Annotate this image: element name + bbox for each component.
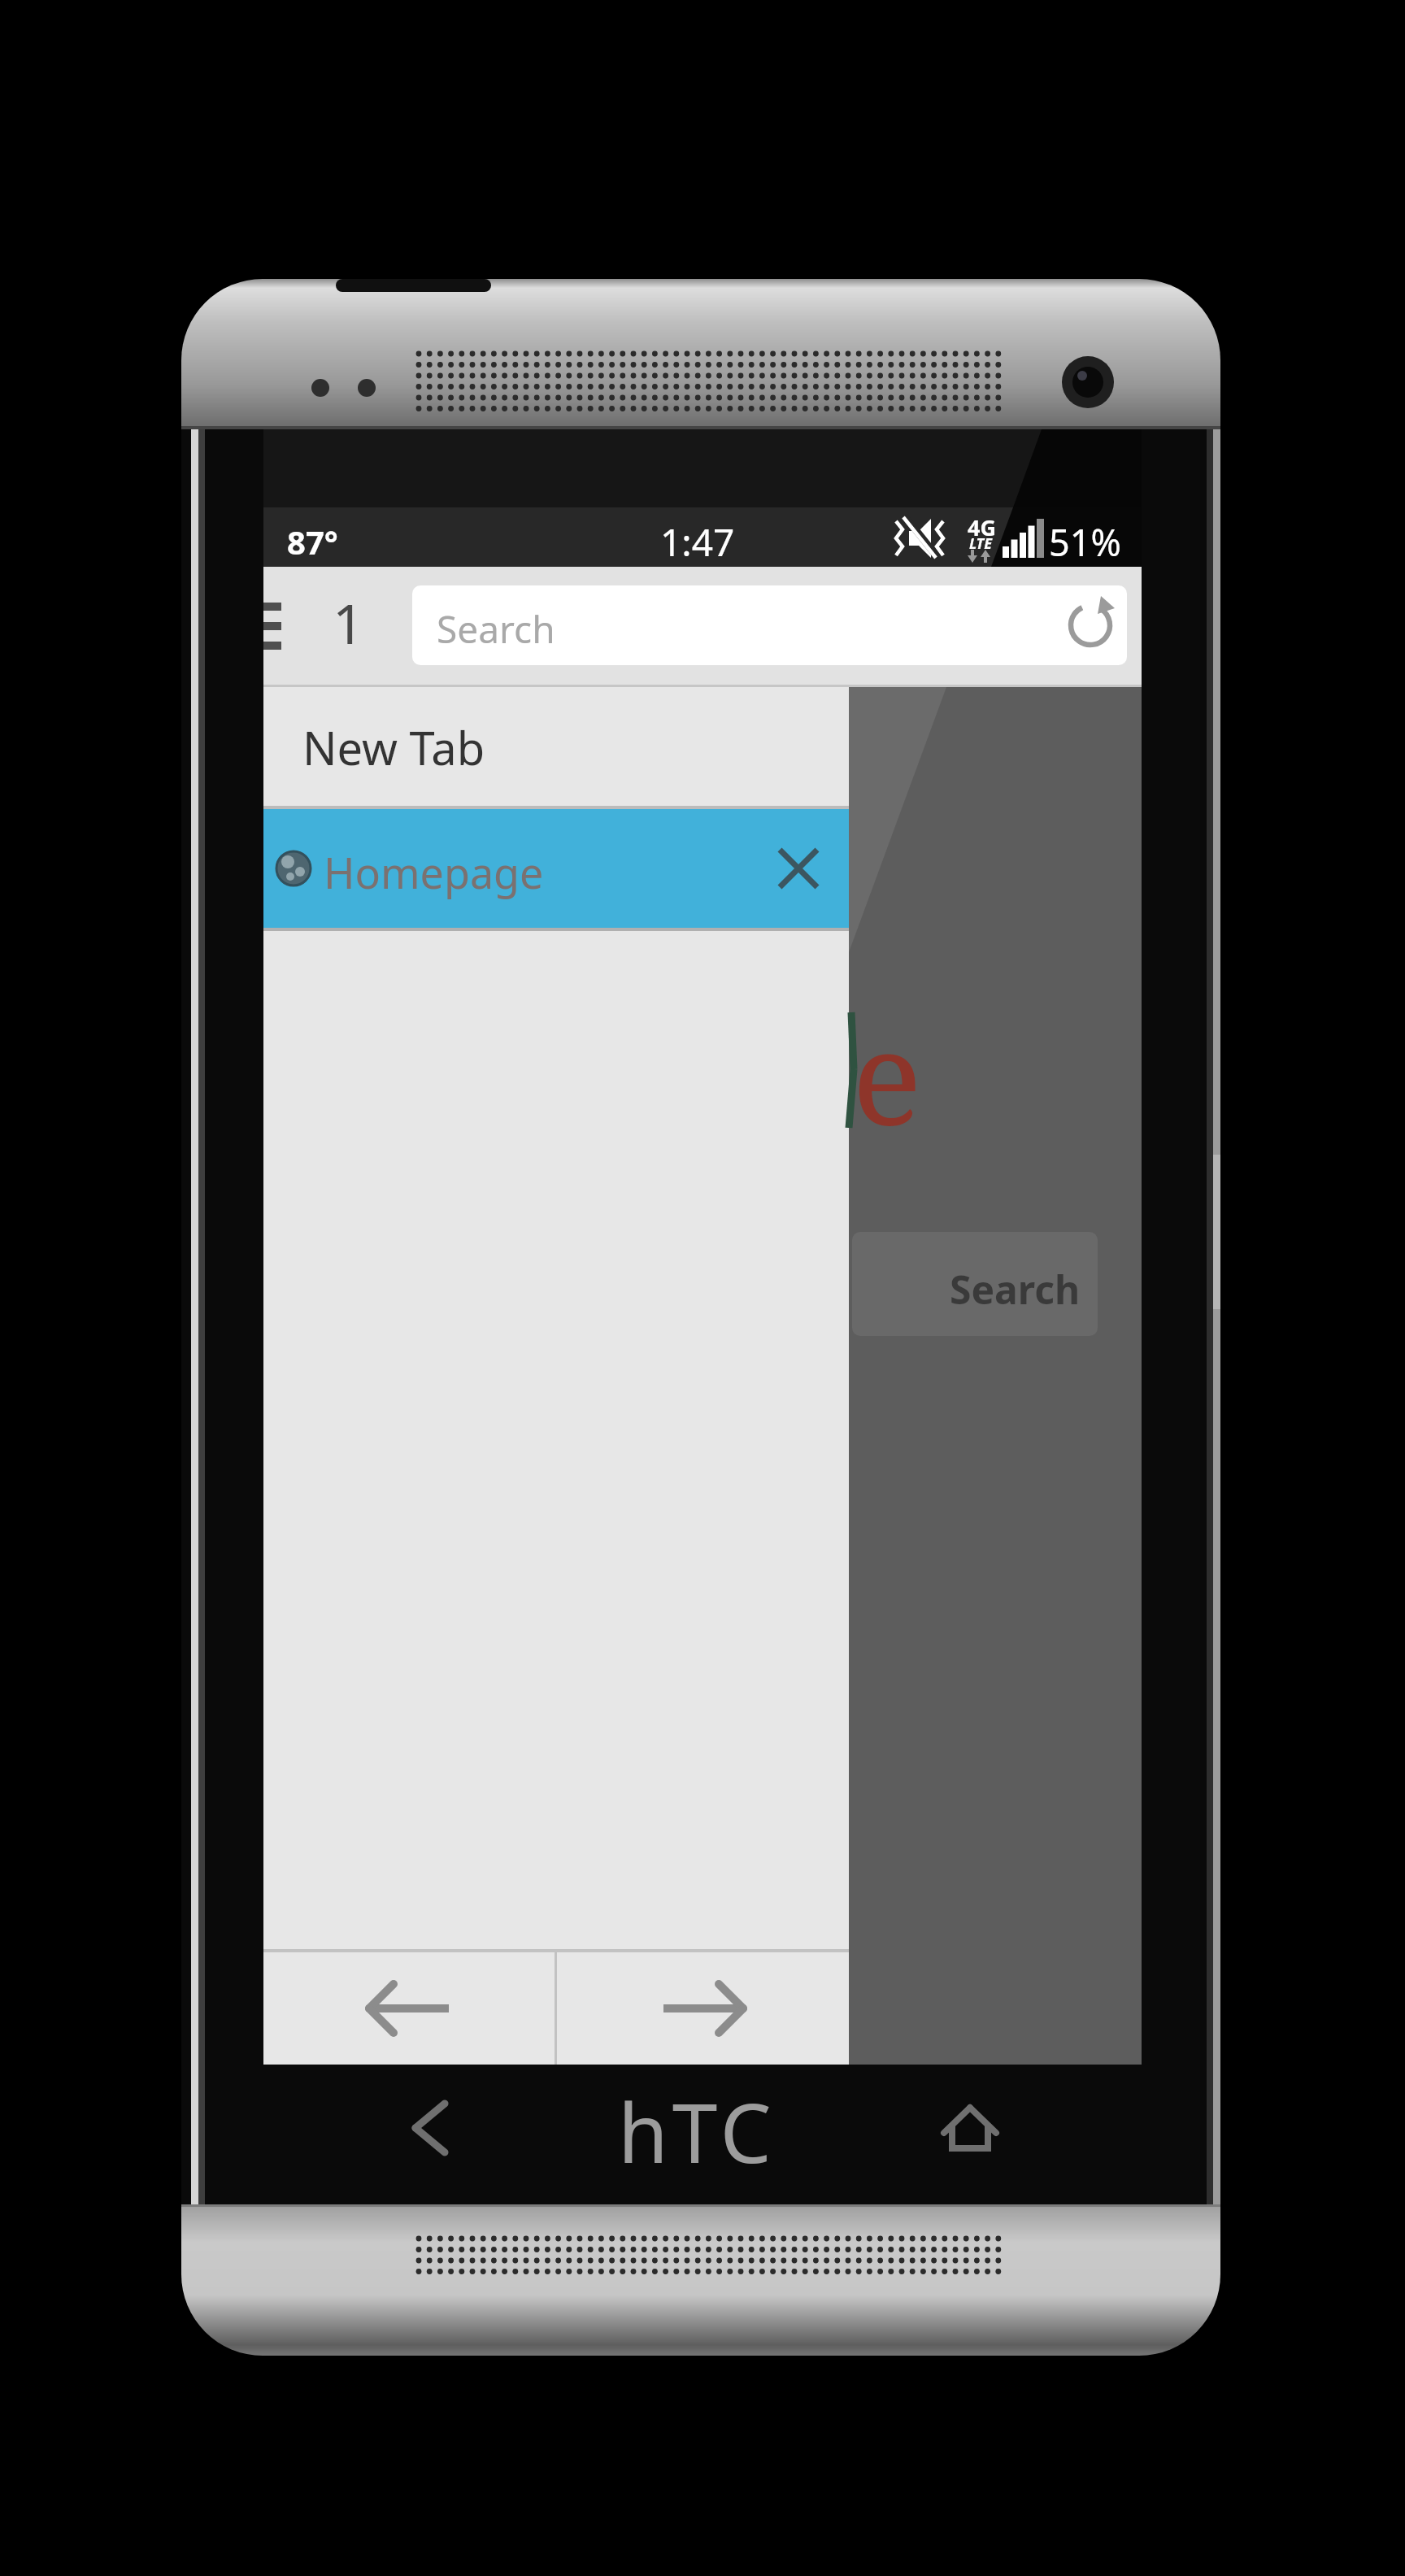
staticText: Homepage (324, 843, 544, 901)
button[interactable] (263, 1952, 555, 2065)
staticText: LTE (969, 533, 992, 554)
staticText: 87° (287, 520, 338, 563)
staticText: 4G (968, 512, 996, 542)
staticText: Search (437, 603, 555, 655)
staticText: Search (950, 1263, 1081, 1316)
button[interactable]: Search (412, 585, 1127, 665)
staticText: hTC (618, 2076, 776, 2187)
button[interactable]: New Tab (263, 687, 849, 806)
button[interactable]: Search (852, 1232, 1098, 1336)
staticText: 51% (1049, 517, 1121, 567)
staticText: 1 (333, 585, 364, 660)
button[interactable] (557, 1952, 849, 2065)
staticText: 1:47 (660, 516, 735, 568)
staticText: New Tab (302, 716, 485, 778)
staticText: e (852, 986, 922, 1163)
button[interactable]: Homepage (263, 809, 849, 928)
